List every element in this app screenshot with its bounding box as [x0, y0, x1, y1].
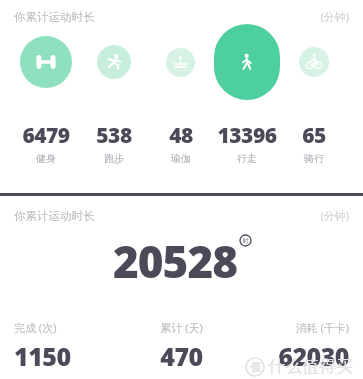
staticText: 瑜伽 — [171, 152, 191, 165]
button[interactable]: 瑜伽 Yoga — [166, 48, 195, 77]
staticText: 48 — [169, 121, 193, 150]
button[interactable]: 累计 (天) — [125, 320, 237, 373]
staticText: 累计 (天) — [160, 320, 203, 335]
staticText: 1150 — [14, 339, 71, 373]
button[interactable]: 完成 (次) — [14, 320, 125, 373]
staticText: 骑行 — [304, 152, 324, 165]
button[interactable]: 骑行 Cycling — [299, 47, 329, 77]
staticText: 健身 — [36, 152, 56, 165]
button[interactable]: 健身 Fitness — [20, 36, 72, 88]
staticText: 你累计运动时长 — [14, 10, 95, 24]
button[interactable]: 跑步 Running — [97, 45, 131, 79]
staticText: 消耗 (千卡) — [295, 320, 349, 335]
staticText: 65 — [302, 121, 326, 150]
staticText: 什么值得买 — [268, 356, 353, 377]
staticText: 跑步 — [104, 152, 124, 165]
staticText: 470 — [160, 339, 203, 373]
staticText: (分钟) — [320, 208, 349, 223]
staticText: 值 — [250, 360, 261, 374]
staticText: 62030 — [278, 339, 349, 373]
staticText: 538 — [96, 121, 132, 150]
staticText: 完成 (次) — [14, 320, 57, 335]
staticText: 时 — [239, 237, 252, 247]
staticText: (分钟) — [320, 9, 349, 24]
staticText: 你累计运动时长 — [14, 209, 95, 223]
button[interactable]: 行走 Walking — [214, 24, 280, 100]
staticText: 行走 — [237, 152, 257, 165]
button[interactable]: 消耗 (千卡) — [237, 320, 349, 373]
staticText: 20528 — [113, 231, 237, 291]
staticText: 6479 — [22, 121, 70, 150]
staticText: 13396 — [217, 121, 277, 150]
